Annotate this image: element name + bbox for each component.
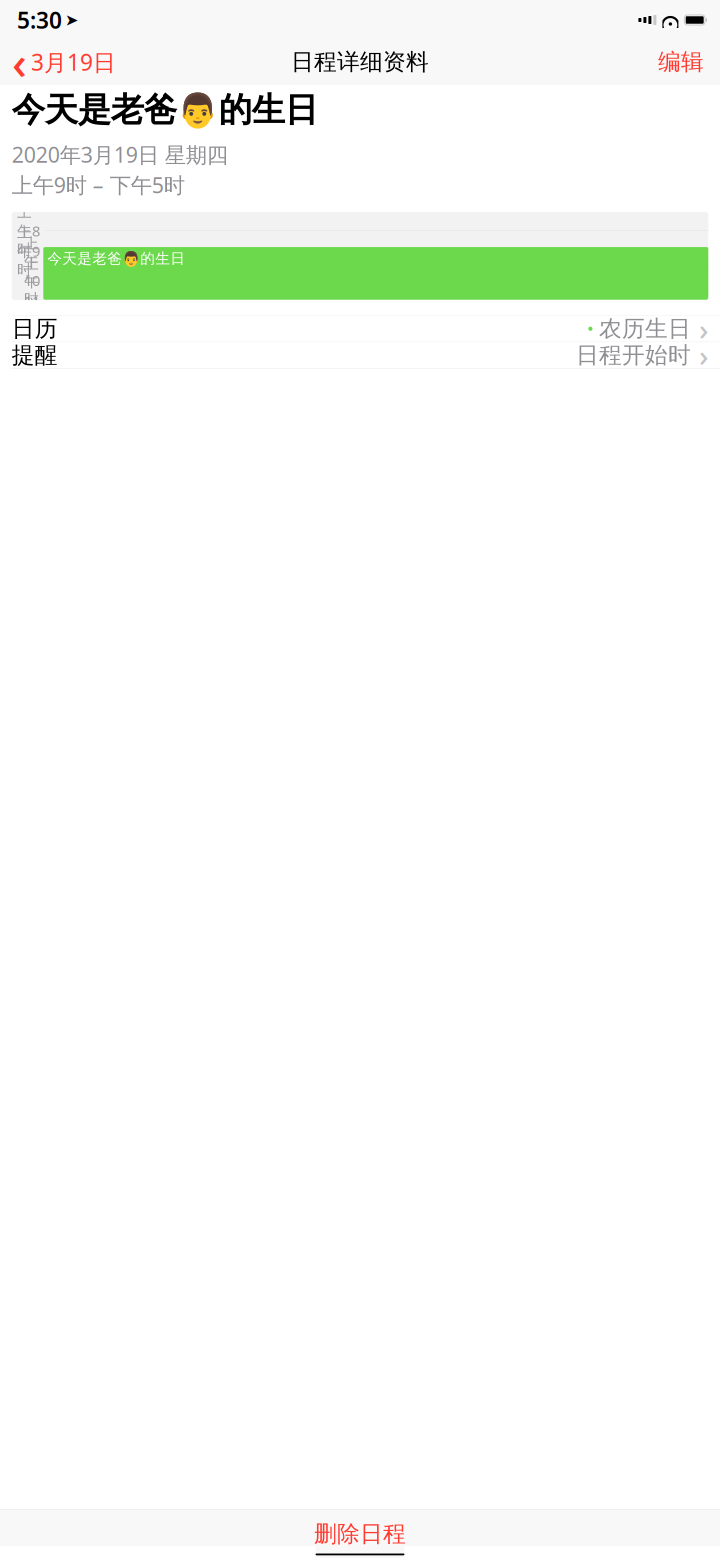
staticText: › (699, 336, 709, 375)
staticText: 今天是老爸👨的生日 (12, 89, 318, 130)
staticText: 上午9时 – 下午5时 (12, 171, 185, 199)
staticText: 3月19日 (31, 47, 116, 77)
button[interactable]: 编辑 (648, 40, 714, 84)
button[interactable]: 删除日程 (0, 1510, 720, 1546)
button[interactable]: 日历 (0, 316, 720, 342)
staticText: 上午11时 (24, 255, 40, 328)
staticText: 提醒 (12, 341, 58, 369)
staticText: ‹ (12, 32, 27, 92)
button[interactable]: ‹ (6, 40, 124, 84)
staticText: 上午9时 (17, 223, 40, 279)
staticText: 今天是老爸👨的生日 (47, 250, 185, 268)
button[interactable]: 提醒 (0, 342, 720, 368)
staticText: 删除日程 (314, 1520, 406, 1548)
staticText: ➤ (65, 11, 78, 29)
staticText: 上午8时 (17, 203, 40, 258)
staticText: 农历生日 (599, 315, 691, 343)
staticText: › (699, 309, 709, 348)
staticText: 日程详细资料 (291, 48, 429, 76)
staticText: 5:30 (17, 5, 62, 35)
staticText: 编辑 (658, 48, 704, 76)
staticText: 日程开始时 (576, 341, 691, 369)
staticText: 日历 (12, 315, 58, 343)
staticText: 2020年3月19日 星期四 (12, 140, 228, 169)
staticText: 上午10时 (24, 235, 40, 308)
